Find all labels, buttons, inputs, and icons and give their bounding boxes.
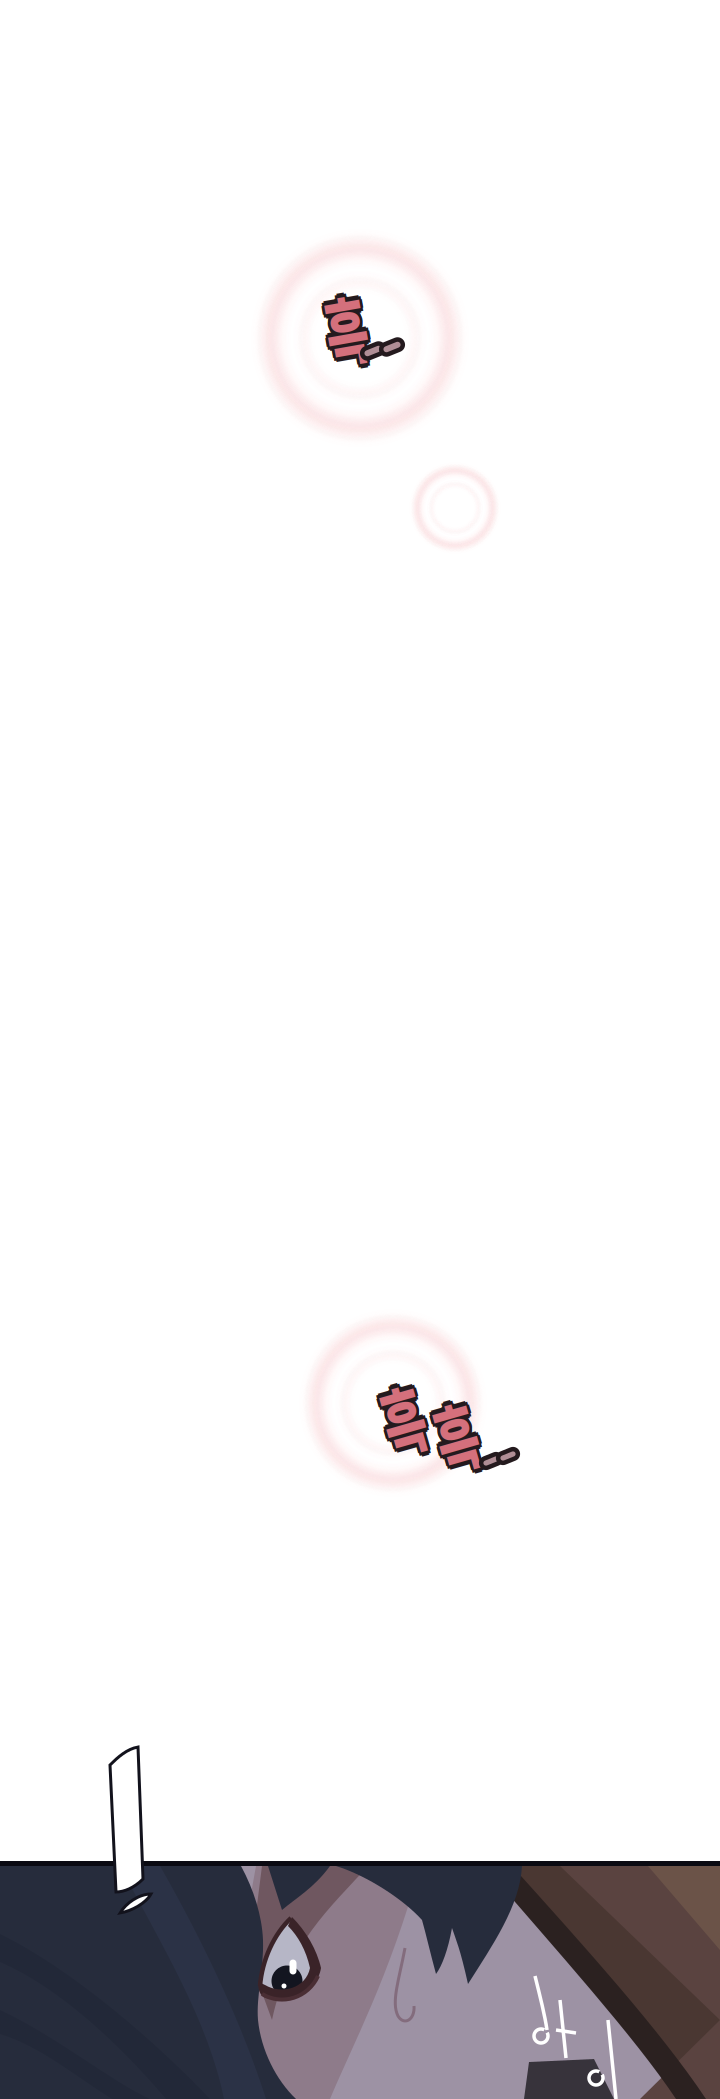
staticText: 흑	[429, 1385, 488, 1477]
staticText: 흑	[373, 1367, 432, 1459]
staticText: 흑	[429, 1391, 488, 1483]
staticText: 흑	[426, 1384, 485, 1476]
staticText: 흑	[369, 1371, 428, 1463]
staticText: 흑	[430, 1388, 489, 1480]
staticText: 흑	[314, 278, 373, 370]
staticText: 흑	[320, 281, 379, 373]
staticText: 흑	[376, 1368, 435, 1460]
staticText: 흑	[422, 1388, 481, 1480]
staticText: 흑	[371, 1368, 430, 1460]
staticText: 흑	[312, 281, 371, 373]
staticText: 흑	[316, 281, 375, 373]
staticText: 흑	[316, 277, 375, 369]
staticText: 흑	[426, 1392, 485, 1484]
staticText: 흑	[316, 285, 375, 377]
staticText: 흑	[319, 278, 378, 370]
staticText: 흑	[371, 1374, 430, 1466]
staticText: 흑	[376, 1374, 435, 1466]
staticText: 흑	[373, 1371, 432, 1463]
staticText: 흑	[314, 284, 373, 376]
staticText: 흑	[319, 284, 378, 376]
staticText: 흑	[424, 1391, 483, 1483]
staticText: 흑	[373, 1375, 432, 1467]
staticText: 흑	[426, 1388, 485, 1480]
staticText: 흑	[377, 1371, 436, 1463]
staticText: 흑	[424, 1385, 483, 1477]
